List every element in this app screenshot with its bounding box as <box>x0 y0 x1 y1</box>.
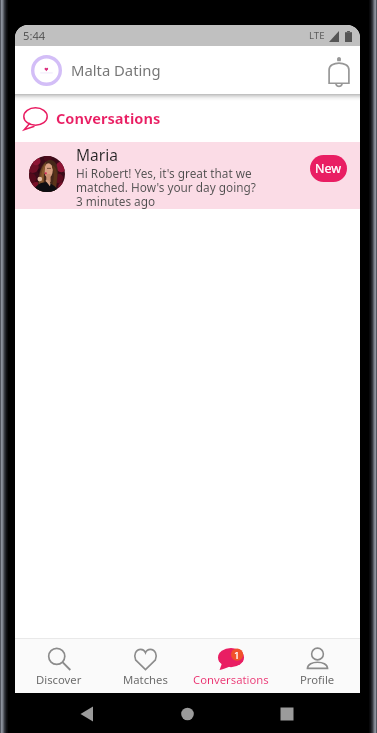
button[interactable]: Maria <box>15 142 360 209</box>
button[interactable]: Matches <box>102 638 188 693</box>
button[interactable]: Notifications <box>320 51 358 89</box>
staticText: Conversations <box>56 108 161 128</box>
staticText: LTE <box>309 29 325 42</box>
button[interactable]: Profile <box>274 638 360 693</box>
staticText: Profile <box>300 672 335 687</box>
staticText: Malta Dating <box>71 60 161 80</box>
staticText: Conversations <box>193 672 269 687</box>
staticText: 1 <box>234 649 240 662</box>
staticText: Hi Robert! Yes, it's great that we match… <box>76 165 256 209</box>
button[interactable]: Discover <box>15 638 102 693</box>
staticText: Maria <box>76 144 118 165</box>
staticText: 5:44 <box>23 28 46 43</box>
staticText: New <box>315 160 342 177</box>
button[interactable]: 1 <box>188 638 274 693</box>
staticText: Discover <box>36 672 82 687</box>
staticText: Matches <box>123 672 168 687</box>
